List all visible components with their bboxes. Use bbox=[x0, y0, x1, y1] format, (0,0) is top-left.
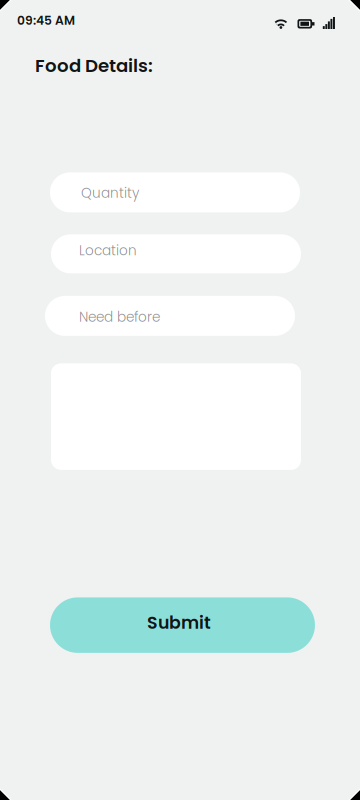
staticText: 09:45 AM bbox=[17, 12, 75, 29]
staticText: Location bbox=[79, 241, 137, 260]
staticText: Need before bbox=[79, 307, 160, 326]
staticText: Food Details: bbox=[35, 53, 153, 78]
staticText: Quantity bbox=[81, 183, 139, 202]
button[interactable]: Submit bbox=[50, 597, 315, 653]
staticText: Submit bbox=[147, 610, 211, 635]
